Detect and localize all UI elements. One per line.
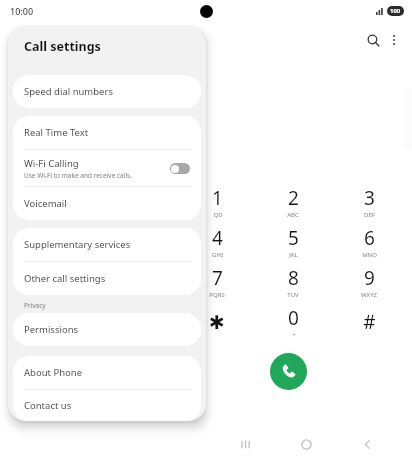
- staticText: +: [292, 331, 296, 339]
- staticText: #: [363, 309, 376, 335]
- staticText: 6: [364, 225, 375, 251]
- staticText: 3: [364, 185, 375, 211]
- button[interactable]: Contact us: [13, 390, 201, 421]
- button[interactable]: More options: [383, 29, 405, 51]
- button[interactable]: Real Time Text: [13, 116, 201, 149]
- staticText: Voicemail: [24, 197, 67, 210]
- staticText: Real Time Text: [24, 126, 89, 139]
- button[interactable]: Permissions: [13, 313, 201, 346]
- staticText: Privacy: [24, 301, 46, 310]
- button[interactable]: Supplementary services: [13, 228, 201, 261]
- staticText: Call settings: [24, 38, 101, 55]
- button[interactable]: 4: [184, 222, 250, 261]
- staticText: MNO: [362, 251, 377, 259]
- button[interactable]: Voicemail: [13, 187, 201, 220]
- button[interactable]: 7: [184, 262, 250, 301]
- button[interactable]: Other call settings: [13, 262, 201, 295]
- button[interactable]: Search: [362, 29, 384, 51]
- staticText: TUV: [287, 291, 299, 299]
- staticText: ABC: [287, 211, 299, 219]
- staticText: 10:00: [10, 5, 34, 17]
- staticText: PQRS: [209, 291, 225, 299]
- button[interactable]: Speed dial numbers: [13, 75, 201, 108]
- button[interactable]: ✱: [184, 302, 250, 341]
- staticText: 4: [212, 225, 223, 251]
- button[interactable]: Home: [291, 431, 321, 457]
- staticText: 0: [288, 305, 299, 331]
- button[interactable]: 1: [184, 182, 250, 221]
- staticText: WXYZ: [361, 291, 377, 299]
- button[interactable]: 9: [336, 262, 402, 301]
- staticText: JKL: [289, 251, 298, 259]
- staticText: GHI: [212, 251, 223, 259]
- staticText: 8: [288, 265, 299, 291]
- button[interactable]: 6: [336, 222, 402, 261]
- button[interactable]: Recents: [231, 431, 261, 457]
- staticText: ✱: [209, 311, 225, 333]
- button[interactable]: 2: [260, 182, 326, 221]
- staticText: DEF: [364, 211, 375, 219]
- button[interactable]: Wi-Fi Calling: [13, 150, 201, 186]
- staticText: 5: [288, 225, 299, 251]
- staticText: 9: [364, 265, 375, 291]
- button[interactable]: Back: [352, 431, 382, 457]
- button[interactable]: 8: [260, 262, 326, 301]
- staticText: Speed dial numbers: [24, 85, 113, 98]
- staticText: Contact us: [24, 399, 72, 412]
- button[interactable]: 5: [260, 222, 326, 261]
- staticText: Wi-Fi Calling: [24, 157, 79, 170]
- staticText: 2: [288, 185, 299, 211]
- staticText: About Phone: [24, 366, 83, 379]
- button[interactable]: 3: [336, 182, 402, 221]
- staticText: 1: [212, 185, 223, 211]
- staticText: 7: [212, 265, 223, 291]
- button[interactable]: Wi-Fi Calling toggle: [170, 163, 190, 174]
- button[interactable]: #: [336, 302, 402, 341]
- button[interactable]: Call: [270, 353, 307, 390]
- staticText: Other call settings: [24, 272, 106, 285]
- staticText: Use Wi-Fi to make and receive calls.: [24, 171, 132, 180]
- staticText: 100: [390, 7, 401, 15]
- button[interactable]: 0: [260, 302, 326, 341]
- button[interactable]: About Phone: [13, 356, 201, 389]
- staticText: Permissions: [24, 323, 79, 336]
- staticText: Supplementary services: [24, 238, 131, 251]
- staticText: QD: [213, 211, 223, 219]
